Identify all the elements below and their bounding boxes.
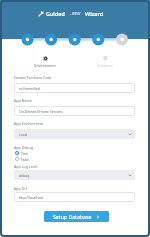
staticText: Setup Database [53,213,92,220]
staticText: nvl/onmvlled [19,86,40,91]
staticText: False [21,157,30,162]
button[interactable]: False [15,156,45,162]
staticText: App Url [14,186,27,191]
staticText: Database [97,63,113,68]
button[interactable]: Local [14,129,135,139]
staticText: Environment [34,63,56,68]
staticText: Local [19,132,28,137]
staticText: debug [19,173,30,178]
staticText: .env [69,10,81,17]
staticText: Wizard [85,10,104,17]
staticText: Envato Purchase Code [14,75,52,80]
button[interactable]: debug [14,170,135,180]
staticText: App Log Level [14,164,38,169]
staticText: http://localhost [19,195,44,200]
button[interactable]: Setup Database [44,211,109,222]
staticText: True [21,151,29,156]
staticText: Guided [46,10,65,17]
staticText: App Name [14,98,32,103]
button[interactable]: Database [87,56,123,68]
button[interactable]: True [15,150,45,156]
staticText: App Debug [14,145,33,150]
staticText: On-Demand Home Services [19,109,63,114]
button[interactable]: Environment [27,56,63,68]
staticText: App Environment [14,121,44,126]
